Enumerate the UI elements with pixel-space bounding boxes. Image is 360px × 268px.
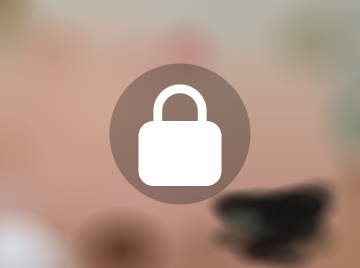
button[interactable]: Locked, private photo	[109, 63, 250, 204]
